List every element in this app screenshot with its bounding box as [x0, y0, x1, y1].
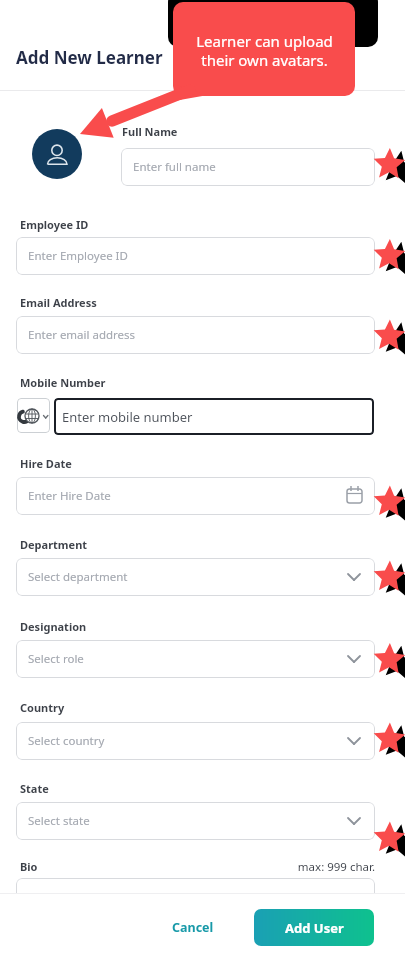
- staticText: Add New Learner: [16, 46, 163, 69]
- button[interactable]: Add User: [254, 909, 374, 946]
- staticText: Cancel: [172, 919, 214, 936]
- staticText: Email Address: [20, 295, 97, 310]
- button[interactable]: Select country: [16, 722, 375, 760]
- staticText: Enter Hire Date: [28, 488, 111, 504]
- staticText: Enter Employee ID: [28, 248, 128, 264]
- button[interactable]: Select role: [16, 640, 375, 678]
- staticText: Select country: [28, 733, 105, 749]
- staticText: Hire Date: [20, 456, 72, 471]
- staticText: Department: [20, 537, 88, 552]
- button[interactable]: Select state: [16, 802, 375, 840]
- staticText: Full Name: [122, 124, 178, 139]
- staticText: Employee ID: [20, 217, 89, 232]
- button[interactable]: Select department: [16, 558, 375, 596]
- button[interactable]: Enter full name: [121, 148, 375, 186]
- staticText: Select role: [28, 651, 84, 667]
- staticText: Country: [20, 700, 65, 715]
- staticText: Learner can upload their own avatars.: [196, 31, 333, 70]
- button[interactable]: [16, 878, 375, 938]
- button[interactable]: Cancel: [160, 906, 226, 948]
- staticText: Select state: [28, 813, 90, 829]
- staticText: Bio: [20, 859, 38, 874]
- staticText: Designation: [20, 619, 87, 634]
- staticText: Add User: [285, 919, 344, 937]
- button[interactable]: Enter Hire Date: [16, 477, 375, 515]
- staticText: Enter mobile number: [62, 408, 193, 426]
- staticText: Select department: [28, 569, 128, 585]
- staticText: State: [20, 781, 49, 796]
- button[interactable]: [32, 129, 82, 179]
- staticText: Mobile Number: [20, 375, 106, 390]
- staticText: max: 999 char.: [16, 859, 375, 960]
- button[interactable]: Enter mobile number: [54, 398, 374, 435]
- button[interactable]: Enter email address: [16, 316, 375, 354]
- staticText: Enter email address: [28, 327, 136, 343]
- button[interactable]: Enter Employee ID: [16, 237, 375, 275]
- staticText: Enter full name: [133, 159, 216, 175]
- button[interactable]: [17, 398, 50, 433]
